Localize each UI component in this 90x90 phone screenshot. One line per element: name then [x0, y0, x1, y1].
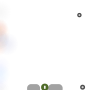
button[interactable]: Options	[77, 13, 82, 17]
button[interactable]: AirPlay	[80, 85, 85, 90]
button[interactable]: Fast forward	[48, 84, 63, 90]
button[interactable]: Play	[41, 84, 48, 90]
button[interactable]: Rewind	[27, 84, 40, 90]
